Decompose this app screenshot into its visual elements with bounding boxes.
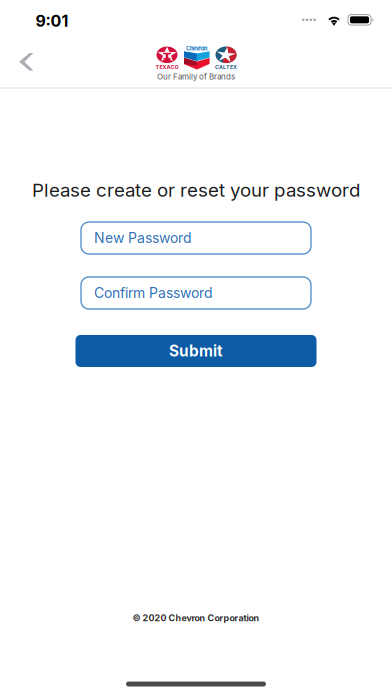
staticText: © 2020 Chevron Corporation — [132, 613, 259, 623]
button[interactable]: Submit — [75, 335, 316, 367]
button[interactable]: Back — [5, 39, 46, 85]
staticText: 9:01 — [35, 11, 68, 31]
button[interactable]: New Password — [81, 222, 311, 254]
staticText: New Password — [94, 229, 192, 246]
staticText: Our Family of Brands — [157, 72, 235, 81]
staticText: Please create or reset your password — [32, 179, 360, 201]
staticText: Chevron — [186, 45, 207, 52]
staticText: TEXACO — [155, 64, 178, 70]
staticText: Submit — [169, 342, 223, 360]
staticText: CALTEX — [215, 64, 237, 70]
staticText: Confirm Password — [94, 284, 213, 301]
button[interactable]: Confirm Password — [81, 277, 311, 309]
